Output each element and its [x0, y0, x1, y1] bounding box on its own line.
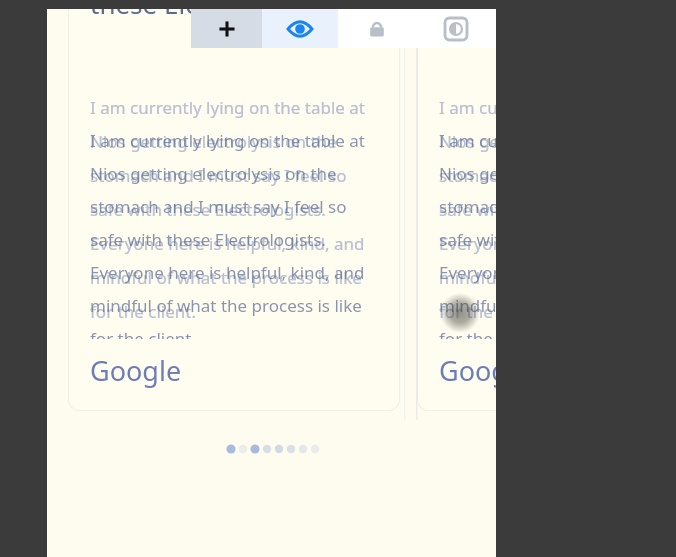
- button[interactable]: Lock: [338, 9, 415, 48]
- staticText: I am currently lying on the table at Nio…: [90, 96, 382, 326]
- button[interactable]: these Electrologists: [68, 0, 400, 411]
- staticText: these Electrologists: [90, 0, 328, 21]
- button[interactable]: Contrast: [415, 9, 496, 48]
- staticText: Google: [90, 352, 182, 389]
- button[interactable]: these Electrologists: [417, 0, 496, 411]
- staticText: I am currently lying on the table at Nio…: [439, 96, 496, 326]
- staticText: Google: [439, 352, 496, 389]
- button[interactable]: Preview: [262, 9, 338, 48]
- button[interactable]: Add: [191, 9, 262, 48]
- staticText: I am currently lying on the table at Nio…: [90, 129, 382, 339]
- staticText: these Electrologists: [439, 0, 496, 21]
- staticText: I am currently lying on the table at Nio…: [439, 129, 496, 339]
